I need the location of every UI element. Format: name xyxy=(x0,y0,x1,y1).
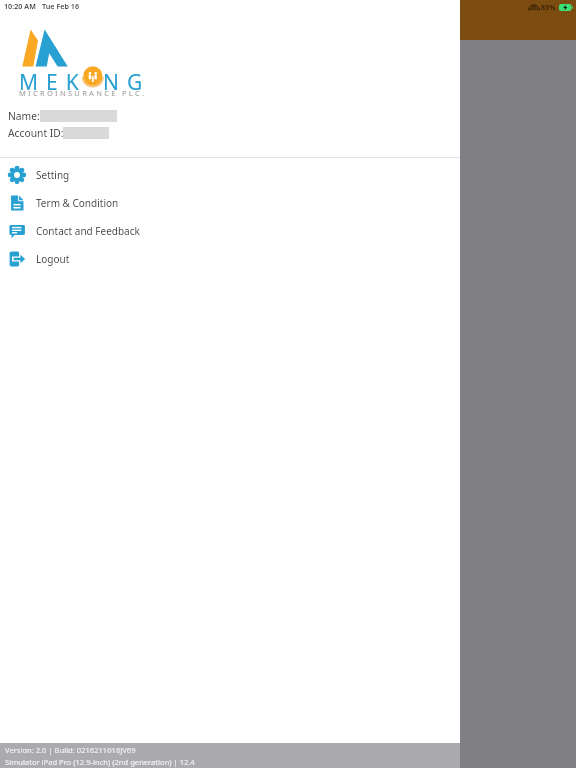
staticText: Setting xyxy=(36,168,70,182)
staticText: Logout xyxy=(36,252,70,266)
staticText: MEK xyxy=(19,68,87,97)
staticText: Version: 2.0 | Build: 0216211018JV69 xyxy=(5,745,136,755)
staticText: NG xyxy=(103,68,151,97)
button[interactable]: Term & Condition xyxy=(0,189,460,217)
other: Logout xyxy=(8,250,26,268)
staticText: Tue Feb 16 xyxy=(42,1,80,11)
staticText: Simulator iPad Pro (12.9-inch) (2nd gene… xyxy=(5,757,195,767)
staticText: MICROINSURANCE PLC. xyxy=(19,88,147,98)
staticText: Term & Condition xyxy=(36,196,119,210)
other: Setting xyxy=(8,166,26,184)
staticText: Name: xyxy=(8,109,40,123)
staticText: 83% xyxy=(541,2,556,12)
other: Term & Condition xyxy=(8,194,26,212)
staticText: Contact and Feedback xyxy=(36,224,140,238)
staticText: Account ID: xyxy=(8,126,64,140)
button[interactable]: Logout xyxy=(0,245,460,273)
button[interactable]: Setting xyxy=(0,161,460,189)
button[interactable]: Contact and Feedback xyxy=(0,217,460,245)
staticText: 10:20 AM xyxy=(4,1,36,11)
other: Contact and Feedback xyxy=(8,222,26,240)
